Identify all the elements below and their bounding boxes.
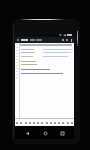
button[interactable]: Editor tool (61, 121, 65, 125)
button[interactable]: Editor tool (45, 121, 49, 125)
button[interactable]: Back (22, 128, 32, 138)
button[interactable]: Editor tool (53, 121, 57, 125)
button[interactable]: Editor tool (70, 121, 74, 125)
button[interactable]: Editor tool (57, 121, 61, 125)
button[interactable]: Editor tool (49, 121, 53, 125)
button[interactable]: Redo (65, 38, 69, 42)
button[interactable]: Editor tool (32, 121, 36, 125)
button[interactable]: Editor tool (36, 121, 40, 125)
button[interactable]: Undo (61, 38, 65, 42)
button[interactable]: Navigate up (16, 38, 20, 42)
button[interactable]: Editor tool (19, 121, 23, 125)
button[interactable]: Editor tool (15, 121, 19, 125)
button[interactable]: Editor tool (40, 121, 44, 125)
button[interactable]: Home (40, 128, 50, 138)
button[interactable]: Editor tool (28, 121, 32, 125)
button[interactable]: Editor tool (24, 121, 28, 125)
button[interactable]: Editor tool (66, 121, 70, 125)
button[interactable]: Recent apps (57, 128, 67, 138)
button[interactable]: More options (69, 38, 73, 42)
